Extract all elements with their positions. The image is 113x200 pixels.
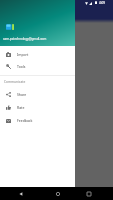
staticText: Tools bbox=[17, 64, 26, 69]
button[interactable]: Home bbox=[51, 187, 64, 200]
button[interactable]: Import bbox=[0, 48, 75, 60]
staticText: Rate bbox=[17, 105, 25, 110]
button[interactable]: Recents bbox=[82, 187, 95, 200]
staticText: Share bbox=[17, 92, 27, 97]
staticText: Communicate bbox=[4, 80, 26, 84]
staticText: Feedback bbox=[17, 118, 33, 123]
button[interactable]: Feedback bbox=[0, 114, 75, 127]
button[interactable]: Share bbox=[0, 88, 75, 101]
staticText: Import bbox=[17, 52, 29, 57]
button[interactable]: Tools bbox=[0, 60, 75, 72]
button[interactable]: Rate bbox=[0, 101, 75, 114]
button[interactable]: Back bbox=[14, 187, 27, 200]
staticText: care.pstechnology@gmail.com bbox=[3, 37, 47, 41]
staticText: 4:09 bbox=[99, 1, 106, 5]
